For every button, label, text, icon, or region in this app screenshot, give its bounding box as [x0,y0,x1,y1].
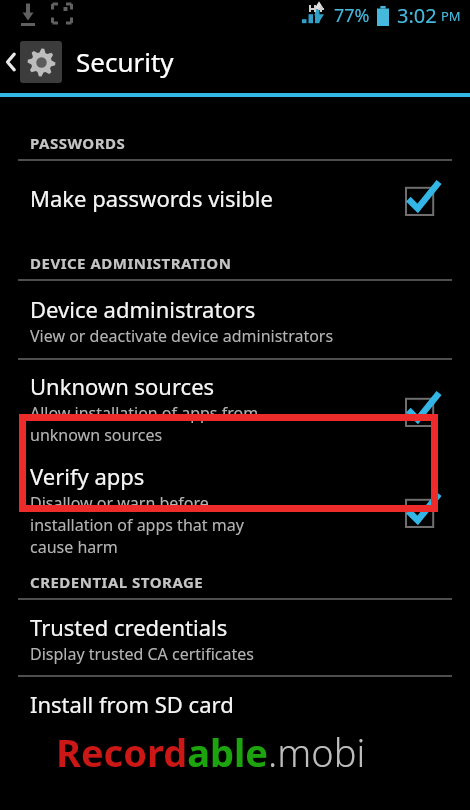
staticText: Device administrators [30,294,256,324]
staticText: PM [441,7,461,25]
staticText: Recordable.mobi [56,726,366,778]
staticText: Allow installation of apps from unknown … [30,402,259,446]
button[interactable]: Install from SD card [0,677,470,731]
button[interactable]: Device administrators [0,281,470,358]
staticText: Disallow or warn before installation of … [30,492,244,558]
button[interactable]: Unknown sources [0,360,470,455]
staticText: Display trusted CA certificates [30,643,254,665]
staticText: Install from SD card [30,689,234,719]
staticText: DEVICE ADMINISTRATION [30,253,232,273]
staticText: CREDENTIAL STORAGE [30,572,204,592]
staticText: 3:02 [397,2,437,29]
staticText: Verify apps [30,461,145,491]
button[interactable]: Navigate up [0,32,64,92]
staticText: 77% [334,3,370,28]
staticText: Make passwords visible [30,183,273,213]
button[interactable]: Trusted credentials [0,600,470,675]
staticText: View or deactivate device administrators [30,325,334,347]
button[interactable]: Verify apps [0,455,470,566]
staticText: Unknown sources [30,371,215,401]
button[interactable]: Security [76,44,174,79]
staticText: Trusted credentials [30,612,228,642]
button[interactable]: Make passwords visible [0,161,470,235]
staticText: PASSWORDS [30,133,126,153]
